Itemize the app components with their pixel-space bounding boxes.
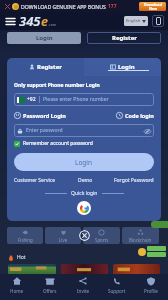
- staticText: 177: [108, 3, 117, 10]
- button[interactable]: Login: [84, 58, 161, 76]
- button[interactable]: Sign in with Google: [77, 201, 91, 215]
- button[interactable]: Menu: [4, 15, 17, 28]
- button[interactable]: Customer Service: [14, 177, 56, 184]
- button[interactable]: Offers: [33, 274, 66, 300]
- staticText: e: [41, 12, 48, 30]
- button[interactable]: [8, 264, 56, 276]
- staticText: Live: [59, 237, 68, 243]
- staticText: English: [126, 18, 141, 24]
- button[interactable]: Code login: [116, 112, 154, 119]
- staticText: Download Now: [144, 2, 162, 11]
- staticText: Offers: [43, 288, 57, 294]
- button[interactable]: Support: [100, 274, 134, 300]
- button[interactable]: Invite: [66, 274, 100, 300]
- staticText: Support: [108, 288, 126, 294]
- button[interactable]: Live: [45, 227, 81, 244]
- staticText: .com: [48, 22, 57, 27]
- button[interactable]: Login: [14, 153, 154, 171]
- button[interactable]: [113, 264, 160, 276]
- button[interactable]: Close: [79, 230, 90, 241]
- staticText: Sports: [95, 237, 109, 243]
- button[interactable]: Close banner: [3, 2, 11, 10]
- staticText: Invite: [77, 288, 90, 294]
- staticText: Fishing: [18, 237, 33, 243]
- staticText: Password Login: [23, 112, 66, 119]
- button[interactable]: Forgot Password: [114, 177, 154, 184]
- button[interactable]: Sports: [83, 227, 120, 244]
- button[interactable]: Profile: [134, 274, 168, 300]
- staticText: Login: [118, 63, 135, 71]
- button[interactable]: Fishing: [7, 227, 43, 244]
- button[interactable]: English: [124, 16, 148, 26]
- staticText: 345: [19, 12, 41, 30]
- staticText: Register: [112, 34, 137, 42]
- staticText: Blockchain: [129, 237, 152, 243]
- staticText: Quick login: [71, 190, 98, 197]
- staticText: Please enter Phone number: [43, 96, 109, 103]
- button[interactable]: Download app: [152, 15, 164, 27]
- staticText: Profile: [144, 288, 158, 294]
- button[interactable]: Register: [7, 58, 84, 76]
- button[interactable]: Show password: [143, 127, 151, 135]
- button[interactable]: [61, 264, 108, 276]
- button[interactable]: Blockchain: [122, 227, 159, 244]
- staticText: Only support Phone number Login: [14, 82, 100, 89]
- button[interactable]: Download Now: [139, 2, 166, 11]
- staticText: Remember account password: [23, 140, 93, 147]
- staticText: Login: [36, 34, 53, 42]
- button[interactable]: Home: [0, 274, 33, 300]
- staticText: Enter password: [26, 127, 63, 134]
- button[interactable]: Password Login: [14, 112, 66, 119]
- button[interactable]: Demo: [78, 177, 93, 184]
- staticText: Home: [10, 288, 24, 294]
- staticText: Register: [37, 63, 62, 71]
- staticText: +92: [27, 96, 36, 103]
- button[interactable]: Login: [7, 32, 81, 44]
- button[interactable]: Register: [87, 32, 161, 44]
- staticText: DOWNLOAD GENUINE APP BONUS: [21, 3, 106, 10]
- staticText: Hot: [17, 254, 26, 261]
- staticText: Login: [75, 158, 93, 167]
- button[interactable]: Remember account password: [14, 140, 93, 147]
- staticText: Code login: [125, 112, 154, 119]
- button[interactable]: Promotion: [151, 221, 168, 228]
